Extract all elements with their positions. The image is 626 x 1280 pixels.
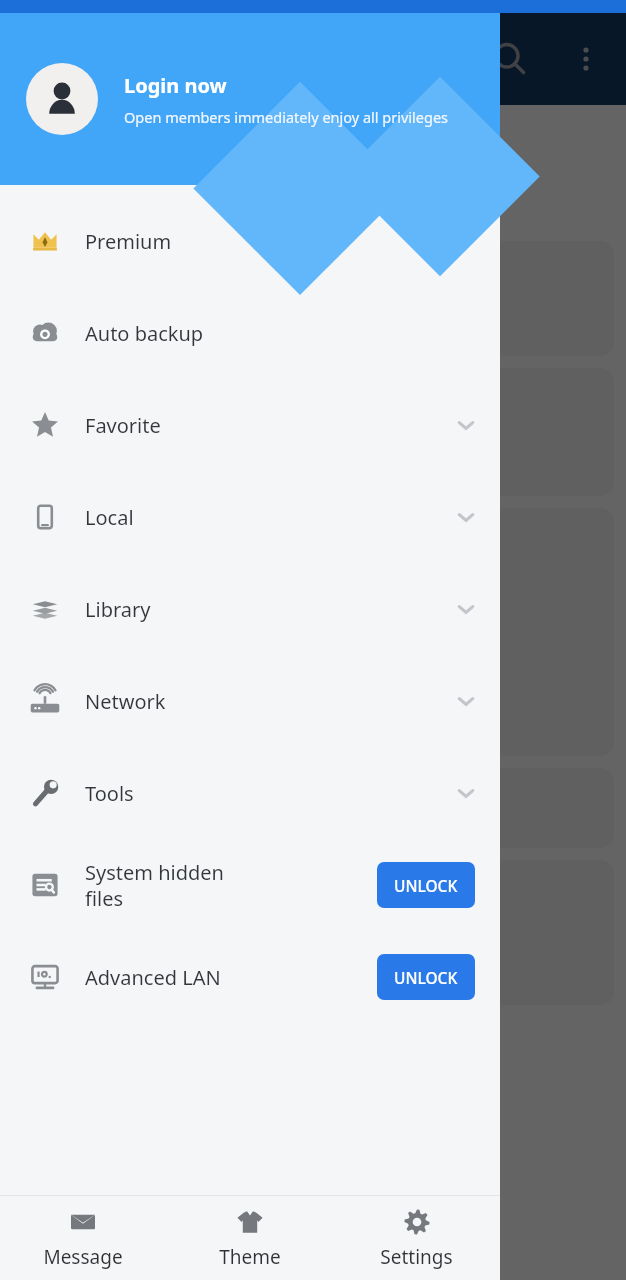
staticText: Open members immediately enjoy all privi… (124, 107, 449, 127)
staticText: Theme (219, 1244, 281, 1270)
other: Search (490, 39, 530, 79)
staticText: Login now (124, 72, 227, 99)
staticText: UNLOCK (394, 967, 458, 988)
staticText: Local (85, 504, 134, 531)
button[interactable]: Login now (0, 13, 500, 185)
staticText: Premium (85, 228, 172, 255)
staticText: Settings (380, 1244, 453, 1270)
staticText: Auto backup (85, 320, 204, 347)
staticText: Library (85, 596, 151, 623)
staticText: Network (85, 688, 166, 715)
staticText: Tools (85, 780, 134, 807)
button[interactable]: Advanced LAN (0, 931, 500, 1023)
other: More options (571, 44, 601, 74)
button[interactable]: Network (0, 655, 500, 747)
button[interactable]: Favorite (0, 379, 500, 471)
button[interactable]: Settings (333, 1196, 500, 1280)
button[interactable]: Library (0, 563, 500, 655)
button[interactable]: Message (0, 1196, 166, 1280)
button[interactable]: Tools (0, 747, 500, 839)
button[interactable]: Theme (166, 1196, 333, 1280)
button[interactable]: UNLOCK (377, 862, 475, 908)
staticText: UNLOCK (394, 875, 458, 896)
button[interactable]: System hidden files (0, 839, 500, 931)
staticText: Message (43, 1244, 123, 1270)
button[interactable]: Local (0, 471, 500, 563)
staticText: System hidden files (85, 859, 377, 912)
button[interactable]: UNLOCK (377, 954, 475, 1000)
staticText: Favorite (85, 412, 161, 439)
staticText: Advanced LAN (85, 964, 377, 991)
button[interactable]: Auto backup (0, 287, 500, 379)
button[interactable]: Premium (0, 195, 500, 287)
